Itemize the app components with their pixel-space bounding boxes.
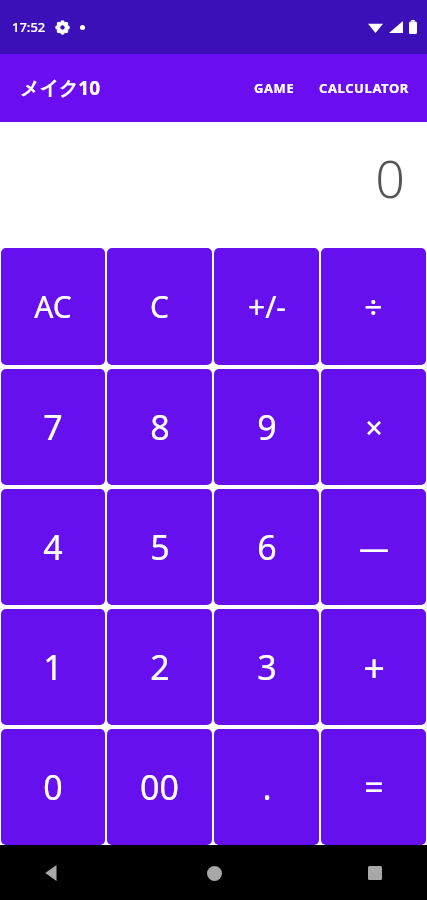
button[interactable]: 1 — [1, 609, 105, 725]
button[interactable]: CALCULATOR — [311, 71, 417, 105]
button[interactable]: +/- — [214, 248, 319, 365]
staticText: 0 — [375, 142, 405, 213]
button[interactable]: 00 — [107, 729, 212, 845]
staticText: . — [262, 764, 272, 810]
button[interactable]: 9 — [214, 369, 319, 485]
button[interactable]: Recent apps — [351, 849, 399, 897]
button[interactable]: 0 — [1, 729, 105, 845]
button[interactable]: Home — [190, 849, 238, 897]
button[interactable]: GAME — [246, 71, 303, 105]
button[interactable]: 2 — [107, 609, 212, 725]
staticText: +/- — [248, 286, 286, 327]
button[interactable]: 5 — [107, 489, 212, 605]
staticText: 2 — [150, 644, 170, 690]
staticText: ÷ — [364, 285, 383, 329]
button[interactable]: 6 — [214, 489, 319, 605]
staticText: 9 — [257, 404, 277, 450]
staticText: + — [363, 641, 385, 693]
staticText: AC — [34, 286, 72, 327]
button[interactable]: — — [321, 489, 426, 605]
staticText: — — [359, 527, 389, 568]
staticText: 8 — [150, 404, 170, 450]
staticText: CALCULATOR — [319, 79, 409, 97]
staticText: 7 — [43, 404, 63, 450]
button[interactable]: 3 — [214, 609, 319, 725]
button[interactable]: = — [321, 729, 426, 845]
staticText: 17:52 — [12, 18, 46, 36]
staticText: 1 — [43, 644, 63, 690]
button[interactable]: 4 — [1, 489, 105, 605]
staticText: メイク10 — [20, 75, 101, 101]
button[interactable]: + — [321, 609, 426, 725]
staticText: = — [364, 764, 384, 810]
button[interactable]: × — [321, 369, 426, 485]
button[interactable]: Back — [28, 849, 76, 897]
button[interactable]: AC — [1, 248, 105, 365]
button[interactable]: 7 — [1, 369, 105, 485]
staticText: 4 — [43, 524, 63, 570]
button[interactable]: . — [214, 729, 319, 845]
staticText: C — [150, 286, 169, 327]
staticText: 5 — [150, 524, 170, 570]
button[interactable]: ÷ — [321, 248, 426, 365]
button[interactable]: C — [107, 248, 212, 365]
staticText: 0 — [43, 764, 63, 810]
staticText: 00 — [140, 764, 179, 810]
staticText: GAME — [254, 79, 295, 97]
staticText: 3 — [257, 644, 277, 690]
button[interactable]: 8 — [107, 369, 212, 485]
staticText: 6 — [257, 524, 277, 570]
staticText: × — [365, 407, 383, 448]
